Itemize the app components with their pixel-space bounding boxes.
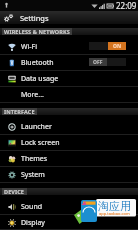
staticText: Wi-Fi [21,42,38,52]
button[interactable]: Launcher [0,119,138,135]
staticText: Lock screen [21,138,60,148]
staticText: WIRELESS & NETWORKS [4,28,70,35]
button[interactable]: Sound [0,199,138,215]
staticText: Data usage [21,74,59,84]
staticText: System [21,170,45,180]
button[interactable]: Data usage [0,71,138,87]
staticText: INTERFACE [4,108,35,115]
staticText: Display [21,218,45,228]
other: Settings [4,13,14,23]
button[interactable]: More... [0,87,138,103]
button[interactable]: Lock screen [0,135,138,151]
staticText: Bluetooth [21,58,54,68]
button[interactable]: Wi-Fi [0,39,138,55]
button[interactable]: Display [0,215,138,230]
button[interactable]: Themes [0,151,138,167]
button[interactable]: System [0,167,138,183]
staticText: Sound [21,202,43,212]
staticText: ON [113,43,122,50]
staticText: 22:09 [116,0,137,11]
staticText: Themes [21,154,48,164]
other: Notification [3,2,10,9]
staticText: More... [21,90,44,100]
staticText: 淘应用 [98,199,131,213]
staticText: app.taobao.com [99,211,130,216]
staticText: Launcher [21,122,52,132]
staticText: Settings [20,13,49,23]
button[interactable]: Bluetooth [0,55,138,71]
staticText: OFF [93,59,103,66]
staticText: DEVICE [4,188,25,195]
